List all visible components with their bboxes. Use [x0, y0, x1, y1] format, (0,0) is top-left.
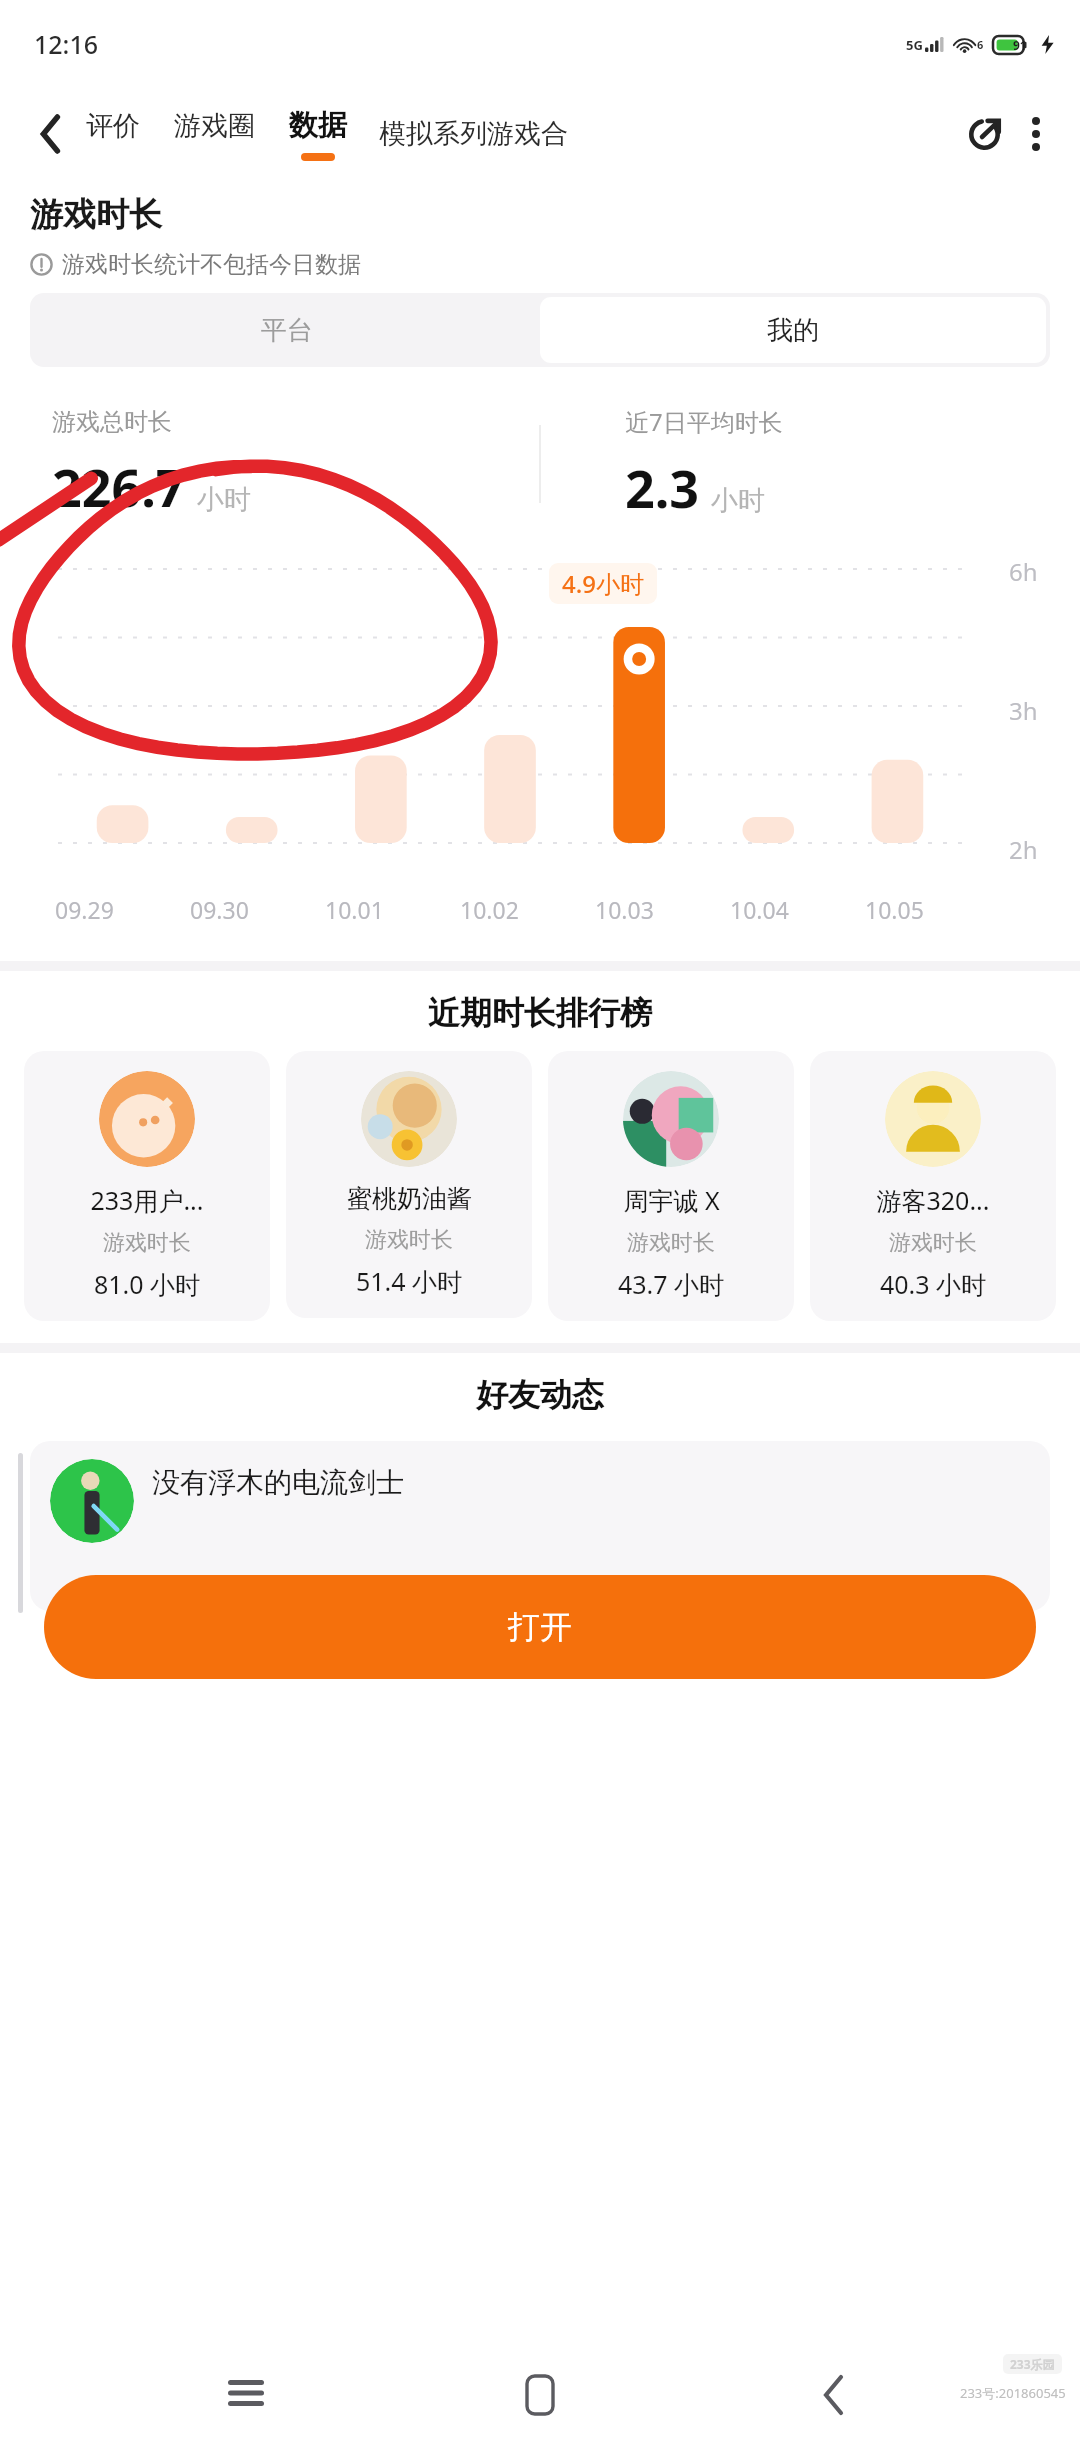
button[interactable]: 没有浮木的电流剑士 [30, 1441, 1050, 1611]
button[interactable]: Recent apps [198, 2347, 294, 2443]
button[interactable]: 我的 [540, 297, 1046, 363]
button[interactable]: 233用户... [24, 1051, 270, 1321]
staticText: 10.05 [865, 894, 924, 925]
staticText: 10.04 [730, 894, 789, 925]
button[interactable]: 蜜桃奶油酱 [286, 1051, 532, 1318]
staticText: 游戏时长 [365, 1226, 453, 1254]
staticText: 40.3 小时 [880, 1267, 987, 1301]
staticText: 数据 [289, 107, 347, 144]
staticText: 5G [906, 36, 923, 54]
staticText: 233用户... [90, 1183, 204, 1217]
staticText: 3h [1009, 694, 1038, 727]
staticText: 游戏时长 [30, 194, 162, 236]
staticText: 233号:201860545 [960, 2384, 1066, 2402]
staticText: 小时 [197, 483, 251, 517]
staticText: 周宇诚 X [623, 1183, 720, 1217]
button[interactable]: Back [24, 107, 78, 161]
button[interactable]: 平台 [34, 297, 540, 363]
staticText: 游戏时长 [103, 1229, 191, 1257]
button[interactable]: Share [958, 108, 1010, 160]
staticText: 81.0 小时 [94, 1267, 201, 1301]
staticText: 6 [977, 37, 984, 52]
staticText: 游客320... [876, 1183, 990, 1217]
staticText: 6h [1009, 555, 1038, 588]
staticText: 好友动态 [476, 1375, 604, 1415]
button[interactable]: 游客320... [810, 1051, 1056, 1321]
button[interactable]: 数据 [287, 107, 349, 161]
button[interactable]: 周宇诚 X [548, 1051, 794, 1321]
staticText: 2.3 [625, 452, 700, 523]
staticText: 12:16 [34, 27, 99, 61]
staticText: 我的 [767, 314, 819, 347]
button[interactable]: 打开 [44, 1575, 1036, 1679]
staticText: 09.29 [55, 894, 114, 925]
staticText: 09.30 [190, 894, 249, 925]
button[interactable]: 评价 [84, 109, 142, 160]
button[interactable]: 游戏圈 [172, 109, 257, 160]
button[interactable]: Home [492, 2347, 588, 2443]
staticText: 近7日平均时长 [625, 405, 783, 438]
staticText: 4.9小时 [562, 567, 644, 600]
staticText: 小时 [711, 484, 765, 518]
staticText: 近期时长排行榜 [428, 993, 652, 1033]
staticText: 91 [1013, 37, 1027, 53]
staticText: 游戏总时长 [52, 407, 172, 437]
button[interactable]: More options [1010, 108, 1062, 160]
staticText: 2h [1009, 833, 1038, 866]
staticText: 游戏时长 [627, 1229, 715, 1257]
staticText: 游戏圈 [174, 109, 255, 143]
staticText: 10.02 [460, 894, 519, 925]
staticText: 233乐园 [1010, 2356, 1055, 2372]
staticText: 蜜桃奶油酱 [347, 1183, 472, 1214]
button[interactable]: 模拟系列游戏合 [379, 117, 958, 151]
staticText: 平台 [261, 314, 313, 347]
staticText: 10.01 [325, 894, 384, 925]
staticText: 游戏时长 [889, 1229, 977, 1257]
staticText: 评价 [86, 109, 140, 143]
staticText: 51.4 小时 [356, 1264, 463, 1298]
staticText: 226.7 [52, 451, 186, 522]
staticText: 打开 [508, 1607, 572, 1647]
staticText: 模拟系列游戏合 [379, 117, 568, 151]
staticText: 10.03 [595, 894, 654, 925]
staticText: 43.7 小时 [618, 1267, 725, 1301]
staticText: 游戏时长统计不包括今日数据 [62, 250, 361, 279]
staticText: 没有浮木的电流剑士 [152, 1465, 404, 1500]
button[interactable]: Back [786, 2347, 882, 2443]
